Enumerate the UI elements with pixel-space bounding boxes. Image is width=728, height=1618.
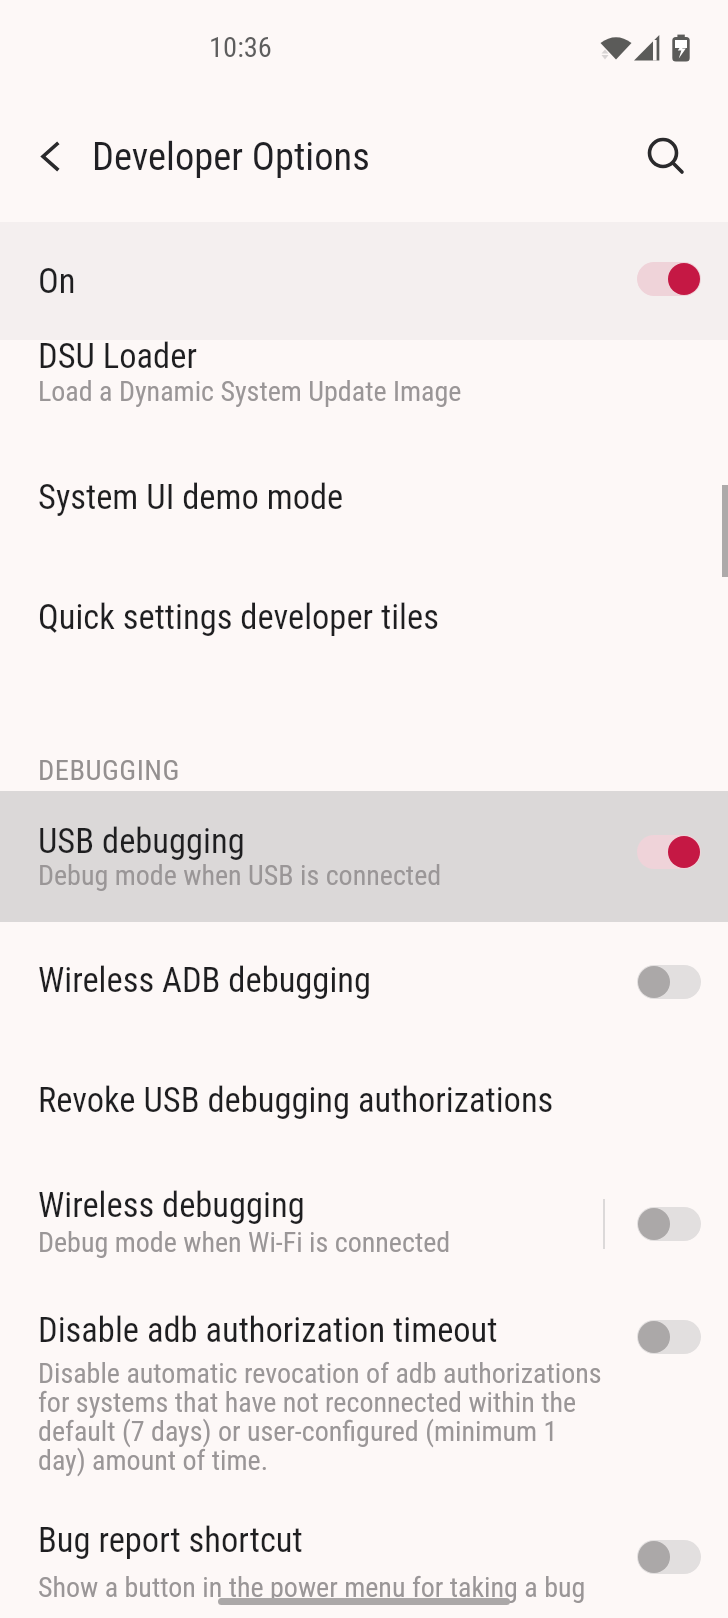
- staticText: On: [38, 261, 76, 301]
- button[interactable]: [0, 791, 728, 922]
- button[interactable]: [637, 1320, 701, 1354]
- staticText: USB debugging: [38, 821, 245, 861]
- staticText: Wireless ADB debugging: [38, 960, 372, 1000]
- button[interactable]: [20, 126, 80, 186]
- staticText: Debug mode when USB is connected: [38, 859, 442, 892]
- staticText: Quick settings developer tiles: [38, 597, 439, 637]
- button[interactable]: [637, 1207, 701, 1241]
- staticText: Disable automatic revocation of adb auth…: [38, 1357, 602, 1390]
- staticText: Revoke USB debugging authorizations: [38, 1080, 554, 1120]
- button[interactable]: [637, 1540, 701, 1574]
- staticText: System UI demo mode: [38, 477, 344, 517]
- button[interactable]: [0, 1495, 728, 1618]
- button[interactable]: [637, 965, 701, 999]
- button[interactable]: [634, 126, 694, 186]
- button[interactable]: [637, 262, 701, 296]
- staticText: for systems that have not reconnected wi…: [38, 1386, 577, 1419]
- button[interactable]: [0, 922, 728, 1042]
- staticText: Developer Options: [92, 134, 370, 179]
- button[interactable]: [0, 1163, 728, 1285]
- button[interactable]: [637, 835, 701, 869]
- staticText: Show a button in the power menu for taki…: [38, 1571, 586, 1604]
- button[interactable]: [0, 316, 728, 440]
- staticText: day) amount of time.: [38, 1444, 269, 1477]
- button[interactable]: [0, 437, 728, 557]
- staticText: Bug report shortcut: [38, 1520, 303, 1560]
- staticText: Debug mode when Wi-Fi is connected: [38, 1226, 451, 1259]
- staticText: Disable adb authorization timeout: [38, 1310, 498, 1350]
- staticText: 10:36: [209, 31, 272, 64]
- button[interactable]: [0, 557, 728, 677]
- button[interactable]: [0, 1043, 728, 1163]
- button[interactable]: [0, 222, 728, 340]
- staticText: DEBUGGING: [38, 754, 180, 787]
- button[interactable]: [0, 1285, 728, 1495]
- staticText: Wireless debugging: [38, 1185, 305, 1225]
- staticText: Load a Dynamic System Update Image: [38, 375, 462, 408]
- staticText: DSU Loader: [38, 336, 197, 376]
- staticText: default (7 days) or user-configured (min…: [38, 1415, 558, 1448]
